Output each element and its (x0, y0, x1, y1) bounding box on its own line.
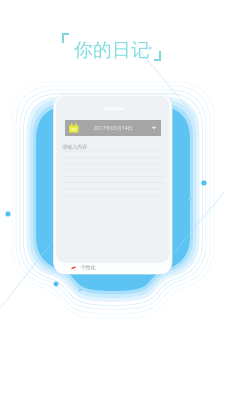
staticText: 你的日记 (74, 38, 150, 61)
button[interactable]: 2017年03月14日 (65, 120, 161, 136)
staticText: 个性化 (80, 264, 95, 271)
staticText: 请输入内容 (62, 144, 87, 150)
button[interactable]: 个性化 (71, 263, 99, 272)
staticText: 2017年03月14日 (93, 124, 132, 132)
